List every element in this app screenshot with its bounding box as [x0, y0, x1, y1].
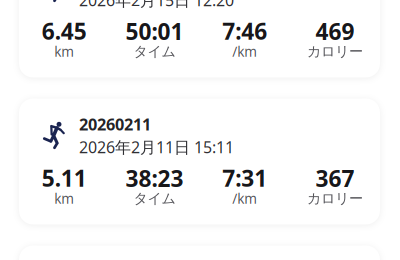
staticText: km [54, 42, 74, 61]
staticText: km [54, 189, 74, 208]
staticText: カロリー [307, 190, 363, 207]
staticText: /km [232, 42, 257, 61]
staticText: 469 [315, 16, 354, 47]
staticText: 7:31 [222, 162, 267, 193]
staticText: /km [232, 189, 257, 208]
staticText: 50:01 [125, 16, 183, 47]
staticText: タイム [133, 43, 175, 60]
staticText: 2026年2月15日 12:20 [79, 0, 234, 11]
button[interactable]: 20260215 [19, 0, 380, 77]
staticText: タイム [133, 190, 175, 207]
staticText: 367 [315, 163, 354, 194]
staticText: 5.11 [42, 162, 87, 193]
button[interactable]: 20260211 [19, 98, 380, 224]
staticText: 20260211 [79, 113, 151, 135]
staticText: 6.45 [42, 15, 87, 46]
staticText: 7:46 [222, 15, 267, 46]
staticText: 38:23 [125, 163, 183, 194]
staticText: 2026年2月11日 15:11 [79, 136, 234, 158]
staticText: カロリー [307, 43, 363, 60]
